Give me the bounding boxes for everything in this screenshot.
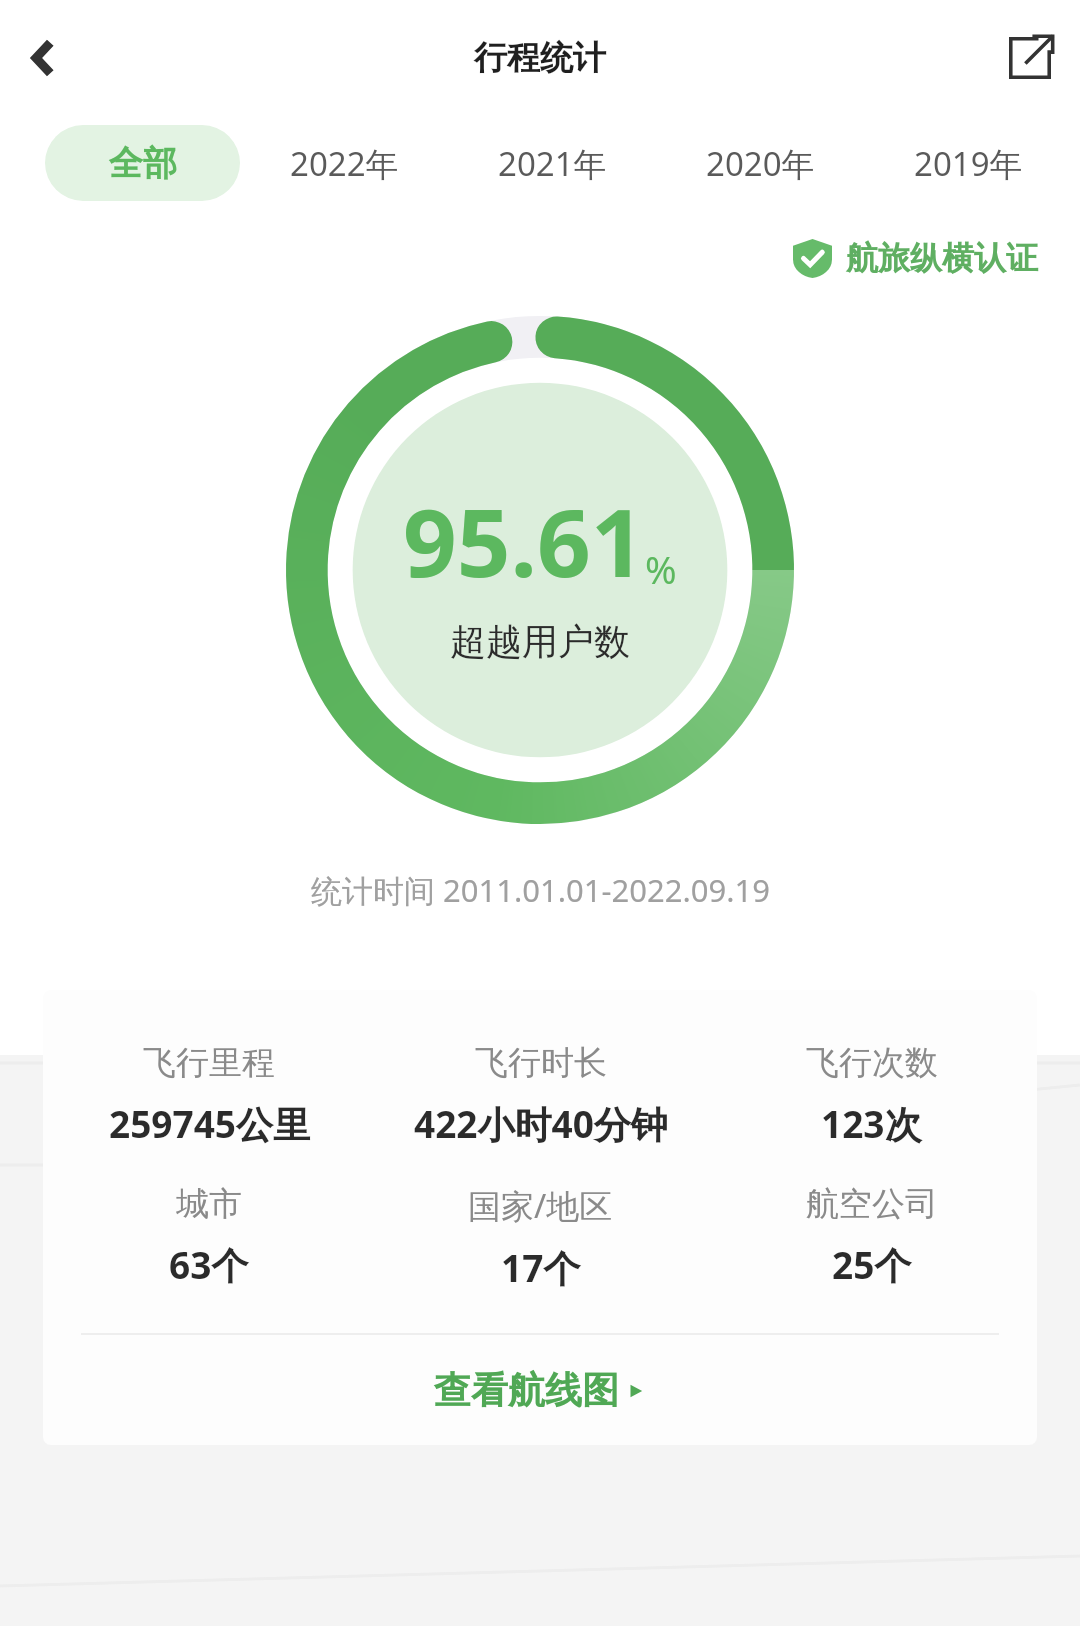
staticText: 国家/地区 [468, 1183, 613, 1228]
staticText: 259745公里 [109, 1098, 310, 1149]
button[interactable]: 航旅纵横认证 [793, 238, 1038, 278]
staticText: 航空公司 [806, 1183, 938, 1225]
staticText: 2022年 [290, 141, 399, 186]
button[interactable]: 航空公司 [706, 1183, 1037, 1290]
staticText: 422小时40分钟 [414, 1098, 668, 1149]
button[interactable]: 飞行时长 [375, 1042, 706, 1149]
staticText: 25个 [832, 1239, 912, 1290]
staticText: 123次 [821, 1098, 922, 1149]
button[interactable]: 2020年 [656, 125, 864, 201]
staticText: 飞行时长 [475, 1042, 607, 1084]
staticText: 63个 [169, 1239, 249, 1290]
staticText: 2021年 [498, 141, 607, 186]
staticText: 飞行里程 [143, 1042, 275, 1084]
staticText: 全部 [109, 142, 177, 185]
staticText: % [645, 543, 677, 595]
button[interactable]: 查看航线图 [43, 1335, 1037, 1445]
staticText: 17个 [501, 1242, 581, 1293]
staticText: 超越用户数 [450, 619, 630, 664]
button[interactable]: 2021年 [448, 125, 656, 201]
staticText: 95.61 [403, 477, 645, 605]
button[interactable]: 飞行次数 [706, 1042, 1037, 1149]
staticText: 飞行次数 [806, 1042, 938, 1084]
staticText: 城市 [176, 1183, 242, 1225]
staticText: 行程统计 [474, 37, 606, 79]
button[interactable]: 国家/地区 [375, 1183, 706, 1293]
staticText: 统计时间 2011.01.01-2022.09.19 [311, 869, 770, 911]
button[interactable]: Back [8, 22, 80, 94]
staticText: 2020年 [706, 141, 815, 186]
staticText: 2019年 [914, 141, 1023, 186]
button[interactable]: 2019年 [864, 125, 1072, 201]
button[interactable]: Share [992, 20, 1068, 96]
button[interactable]: 2022年 [240, 125, 448, 201]
button[interactable]: 飞行里程 [43, 1042, 375, 1149]
button[interactable]: 城市 [43, 1183, 375, 1290]
button[interactable]: 全部 [45, 125, 240, 201]
staticText: 航旅纵横认证 [846, 238, 1038, 278]
staticText: 查看航线图 [434, 1367, 619, 1414]
